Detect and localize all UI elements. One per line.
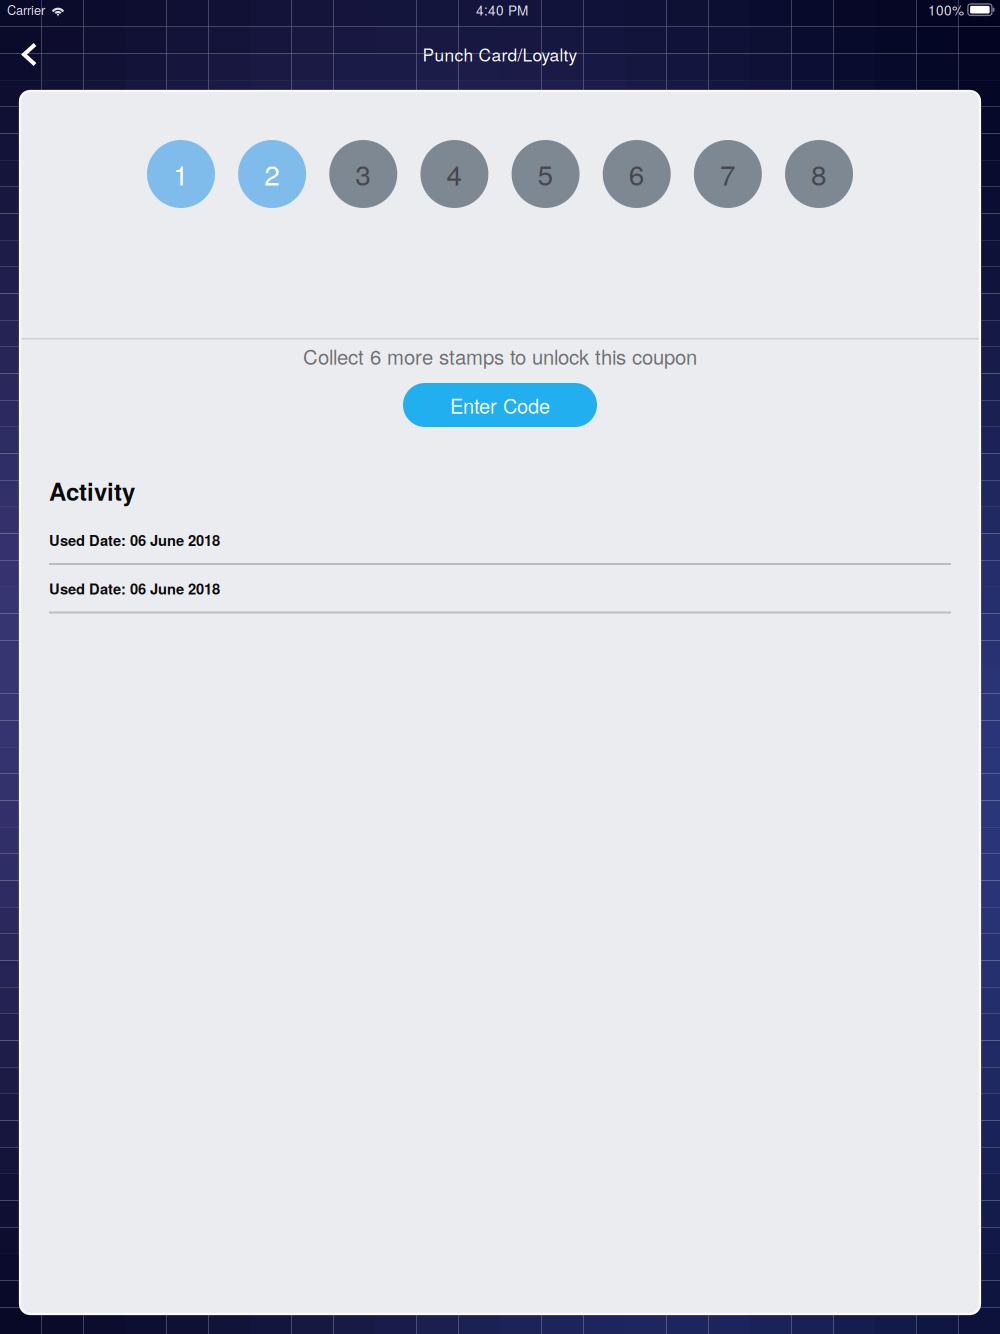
staticText: 8 (811, 153, 827, 194)
staticText: Activity (49, 474, 135, 508)
staticText: Used Date: 06 June 2018 (49, 529, 220, 550)
staticText: 100% (928, 0, 964, 19)
staticText: Enter Code (450, 391, 550, 419)
staticText: Carrier (7, 0, 45, 19)
staticText: 2 (264, 153, 280, 194)
staticText: 6 (629, 153, 645, 194)
staticText: 1 (173, 153, 189, 194)
staticText: Punch Card/Loyalty (422, 42, 577, 66)
button[interactable]: Back (6, 31, 52, 77)
staticText: Collect 6 more stamps to unlock this cou… (303, 341, 697, 370)
staticText: 4:40 PM (476, 0, 528, 19)
staticText: Used Date: 06 June 2018 (49, 578, 220, 599)
staticText: 5 (538, 153, 554, 194)
staticText: 4 (446, 153, 462, 194)
button[interactable]: Enter Code (403, 383, 597, 427)
staticText: 7 (720, 153, 736, 194)
staticText: 3 (355, 153, 371, 194)
